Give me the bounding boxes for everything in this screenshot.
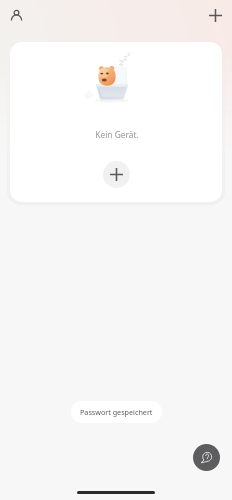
staticText: Passwort gespeichert [80, 407, 153, 417]
button[interactable]: Help [193, 444, 220, 471]
button[interactable]: Add [202, 2, 228, 28]
button[interactable]: Add device [103, 161, 130, 188]
button[interactable]: Account [3, 2, 29, 28]
staticText: Kein Gerät. [11, 129, 222, 140]
